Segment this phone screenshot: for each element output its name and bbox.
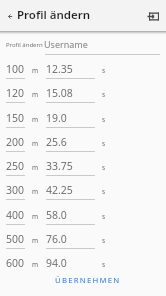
staticText: m — [32, 187, 39, 196]
button[interactable]: 400 — [0, 206, 166, 230]
staticText: 76.0 — [46, 232, 67, 246]
staticText: 33.75 — [46, 159, 73, 173]
staticText: m — [32, 212, 39, 221]
button[interactable]: 100 — [0, 60, 166, 84]
staticText: 19.0 — [46, 111, 67, 125]
staticText: s — [102, 90, 106, 99]
staticText: s — [102, 139, 106, 148]
button[interactable]: Zurück — [2, 8, 18, 24]
staticText: 25.6 — [46, 135, 67, 149]
button[interactable]: 250 — [0, 157, 166, 181]
staticText: 120 — [6, 86, 25, 100]
staticText: 200 — [6, 135, 25, 149]
button[interactable]: 150 — [0, 109, 166, 133]
staticText: ÜBERNEHMEN — [55, 275, 121, 286]
staticText: s — [102, 187, 106, 196]
staticText: m — [32, 90, 39, 99]
staticText: Username — [44, 38, 88, 50]
button[interactable]: 600 — [0, 254, 166, 278]
staticText: 58.0 — [46, 208, 67, 222]
staticText: m — [32, 236, 39, 245]
button[interactable]: 200 — [0, 133, 166, 157]
staticText: 15.08 — [46, 86, 73, 100]
staticText: s — [102, 115, 106, 124]
staticText: m — [32, 139, 39, 148]
staticText: s — [102, 212, 106, 221]
staticText: Profil ändern — [17, 7, 91, 23]
staticText: 250 — [6, 159, 25, 173]
staticText: m — [32, 260, 39, 269]
button[interactable]: 500 — [0, 230, 166, 254]
staticText: 100 — [6, 62, 25, 76]
staticText: m — [32, 66, 39, 75]
staticText: s — [102, 66, 106, 75]
staticText: 300 — [6, 183, 25, 197]
staticText: 500 — [6, 232, 25, 246]
staticText: 94.0 — [46, 256, 67, 270]
button[interactable]: 120 — [0, 84, 166, 108]
button[interactable]: ÜBERNEHMEN — [50, 272, 126, 289]
staticText: s — [102, 260, 106, 269]
staticText: m — [32, 115, 39, 124]
staticText: s — [102, 163, 106, 172]
staticText: 150 — [6, 111, 25, 125]
staticText: Profil ändern — [6, 41, 43, 49]
staticText: 600 — [6, 256, 25, 270]
staticText: 42.25 — [46, 183, 73, 197]
staticText: s — [102, 236, 106, 245]
staticText: m — [32, 163, 39, 172]
staticText: 400 — [6, 208, 25, 222]
button[interactable]: 300 — [0, 181, 166, 205]
button[interactable]: Speichern — [147, 10, 163, 26]
staticText: 12.35 — [46, 62, 73, 76]
